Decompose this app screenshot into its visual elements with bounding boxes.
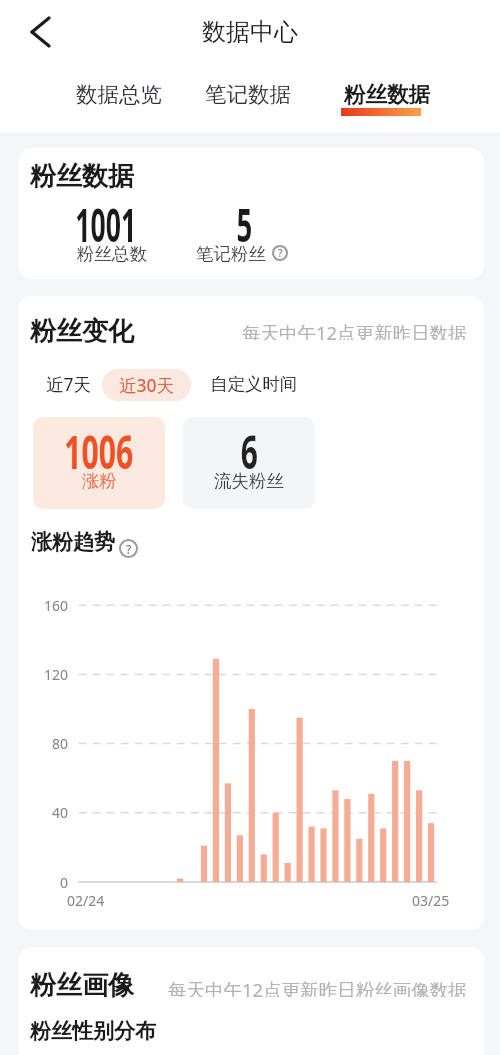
staticText: 粉丝总数 (77, 243, 147, 263)
staticText: 近7天 (46, 372, 92, 396)
staticText: 粉丝数据 (344, 81, 430, 108)
staticText: 笔记数据 (205, 81, 291, 108)
staticText: 数据总览 (76, 81, 162, 108)
staticText: 80 (52, 734, 69, 753)
button[interactable]: 数据总览 (67, 76, 171, 112)
staticText: 6 (241, 420, 258, 483)
button[interactable]: 近30天 (102, 369, 191, 401)
staticText: 自定义时间 (210, 373, 298, 395)
button[interactable] (33, 417, 165, 509)
button[interactable]: 近7天 (31, 367, 106, 400)
staticText: 02/24 (67, 891, 105, 910)
button[interactable]: 笔记数据 (196, 76, 300, 112)
staticText: 涨粉趋势 (31, 529, 115, 555)
staticText: 120 (44, 665, 69, 684)
staticText: 笔记粉丝 (196, 243, 266, 263)
staticText: 1001 (75, 193, 137, 256)
button[interactable] (24, 14, 58, 50)
staticText: 1006 (64, 420, 134, 483)
staticText: 0 (60, 873, 69, 892)
staticText: 近30天 (119, 373, 175, 397)
staticText: 粉丝变化 (30, 315, 134, 348)
staticText: 每天中午12点更新昨日粉丝画像数据 (168, 977, 467, 997)
staticText: 03/25 (412, 891, 450, 910)
staticText: 粉丝数据 (30, 160, 134, 193)
staticText: ? (278, 246, 283, 260)
button[interactable]: ? (272, 245, 288, 261)
staticText: 粉丝画像 (30, 969, 134, 1002)
staticText: 40 (52, 803, 69, 822)
staticText: 流失粉丝 (214, 470, 284, 492)
staticText: ? (126, 541, 132, 557)
staticText: 数据中心 (202, 17, 298, 47)
staticText: 涨粉 (82, 470, 117, 492)
button[interactable]: 粉丝数据 (335, 76, 439, 112)
staticText: 每天中午12点更新昨日数据 (242, 320, 467, 340)
staticText: 粉丝性别分布 (30, 1018, 156, 1044)
staticText: 5 (236, 193, 253, 256)
button[interactable] (183, 417, 315, 509)
staticText: 160 (44, 596, 69, 615)
button[interactable]: ? (119, 539, 138, 558)
button[interactable]: 自定义时间 (204, 367, 304, 400)
